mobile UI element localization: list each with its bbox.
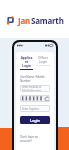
button[interactable]: Officer Login [36, 56, 50, 66]
button[interactable]: Jan [6, 15, 64, 26]
button[interactable]: Applicant Login [20, 56, 33, 70]
button[interactable]: Enter Captcha [20, 105, 50, 112]
button[interactable]: Captcha [20, 95, 50, 102]
button[interactable]: Enter Email Id or Mobile Number [20, 85, 50, 92]
button[interactable]: Refresh captcha [44, 96, 50, 102]
staticText: Don't have an account? [20, 135, 50, 143]
staticText: Applicant Login [20, 56, 33, 68]
staticText: User Name / Mobile Number [20, 75, 50, 83]
staticText: Enter Email Id or Mobile Number [22, 85, 48, 92]
button[interactable]: Login [20, 116, 50, 124]
staticText: Jan [18, 15, 31, 26]
staticText: Samarth [31, 15, 64, 26]
staticText: Officer Login [36, 56, 50, 64]
staticText: Login [30, 118, 40, 123]
staticText: Enter Captcha [22, 107, 39, 111]
